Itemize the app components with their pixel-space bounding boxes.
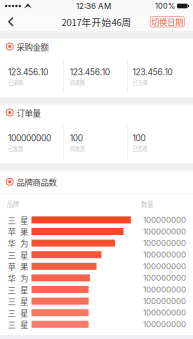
button[interactable]: 切换日期	[150, 16, 184, 27]
staticText: 采购金额	[16, 40, 48, 53]
staticText: 三	[8, 284, 16, 295]
button[interactable]: Back	[0, 12, 22, 31]
staticText: 华	[8, 272, 16, 284]
staticText: 星	[20, 318, 28, 330]
staticText: 100000000	[143, 285, 186, 294]
staticText: 星	[20, 295, 28, 307]
staticText: 待发货	[70, 145, 85, 152]
staticText: 三	[8, 307, 16, 318]
staticText: 100	[70, 133, 83, 143]
staticText: 100000000	[143, 215, 186, 225]
staticText: 100000000	[8, 133, 51, 143]
staticText: 100000000	[143, 273, 186, 283]
staticText: 100	[132, 133, 145, 143]
staticText: 切换日期	[151, 16, 183, 28]
staticText: 品牌商品数	[16, 176, 56, 188]
staticText: 订单量	[16, 106, 40, 119]
staticText: 星	[20, 249, 28, 260]
staticText: 星	[20, 214, 28, 226]
staticText: 100000000	[143, 227, 186, 236]
staticText: 123.456.10	[8, 67, 48, 77]
staticText: 100000000	[143, 319, 186, 329]
staticText: 三	[8, 318, 16, 330]
staticText: 100000000	[143, 250, 186, 260]
staticText: 华	[8, 237, 16, 249]
staticText: 数量	[141, 199, 153, 208]
staticText: 100000000	[143, 261, 186, 271]
staticText: 苹	[8, 260, 16, 272]
staticText: 三	[8, 249, 16, 260]
staticText: 星	[20, 284, 28, 295]
staticText: 123.456.10	[70, 67, 110, 77]
staticText: 12:36 AM	[76, 1, 111, 11]
staticText: 100%	[155, 2, 175, 10]
staticText: 苹	[8, 226, 16, 237]
staticText: 为	[20, 272, 28, 284]
staticText: 100000000	[143, 238, 186, 248]
staticText: 为	[20, 237, 28, 249]
staticText: 已发货	[8, 145, 23, 152]
staticText: 果	[20, 260, 28, 272]
staticText: 2017年开始46周	[61, 15, 131, 29]
staticText: 星	[20, 307, 28, 318]
staticText: 已下单	[132, 79, 147, 86]
staticText: 100000000	[143, 308, 186, 318]
staticText: 已签收	[132, 145, 147, 152]
staticText: 123.456.10	[132, 67, 172, 77]
staticText: 100000000	[143, 296, 186, 306]
staticText: 三	[8, 295, 16, 307]
staticText: 品牌	[7, 199, 19, 208]
staticText: 果	[20, 226, 28, 237]
staticText: 已采购	[8, 79, 23, 86]
staticText: 三	[8, 214, 16, 226]
staticText: 待采购	[70, 79, 85, 86]
